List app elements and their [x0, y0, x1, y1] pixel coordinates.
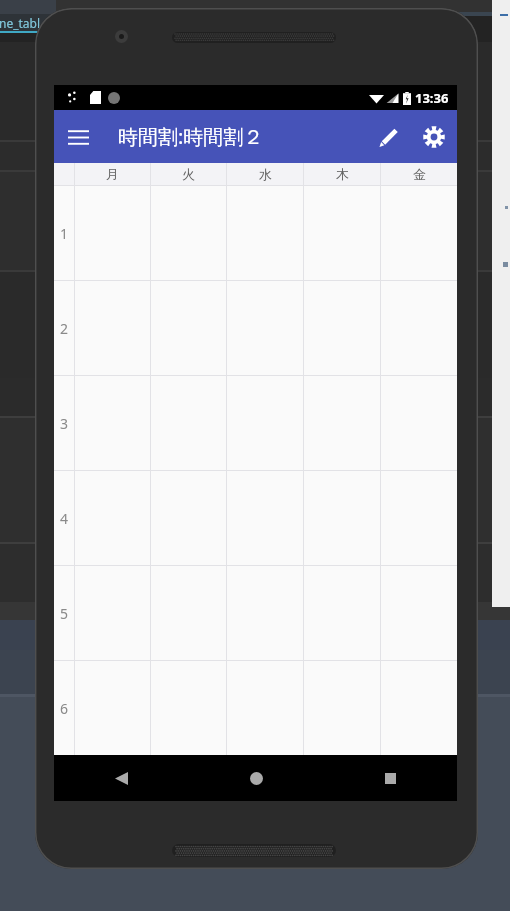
staticText: 6: [60, 699, 69, 718]
staticText: 5: [60, 604, 69, 623]
button[interactable]: Edit: [365, 114, 411, 160]
button[interactable]: Home: [189, 755, 323, 801]
staticText: 4: [60, 509, 69, 528]
staticText: 火: [182, 166, 195, 182]
staticText: 木: [336, 166, 349, 182]
staticText: 2: [60, 319, 69, 338]
staticText: 水: [259, 166, 272, 182]
button[interactable]: Back: [54, 755, 189, 801]
staticText: 1: [60, 224, 69, 243]
staticText: 月: [106, 166, 119, 182]
button[interactable]: Settings: [411, 114, 457, 160]
staticText: 金: [413, 166, 426, 182]
button[interactable]: Recent apps: [323, 755, 457, 801]
button[interactable]: Open navigation menu: [54, 113, 102, 161]
staticText: 時間割:時間割２: [118, 123, 264, 150]
staticText: 3: [60, 414, 69, 433]
staticText: ne_tabl: [0, 15, 41, 31]
staticText: 13:36: [415, 89, 449, 107]
